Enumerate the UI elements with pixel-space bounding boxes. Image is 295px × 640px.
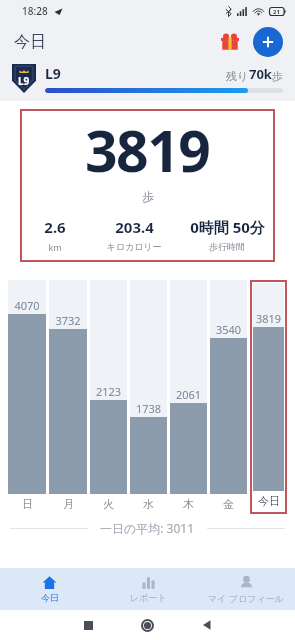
staticText: 2061 [170,387,207,402]
staticText: 今日 [258,494,280,508]
button[interactable]: Recents [59,610,118,640]
staticText: 歩 [142,189,154,204]
staticText: 3819 [253,311,284,326]
staticText: 一日の平均: 3011 [100,520,195,536]
staticText: km [48,241,62,253]
staticText: キロカロリー [106,241,162,252]
staticText: 火 [103,497,114,511]
staticText: 月 [63,497,74,511]
button[interactable]: Add [253,27,283,57]
staticText: 0時間 50分 [190,217,265,237]
staticText: 3540 [210,322,247,337]
staticText: 21 [273,8,280,16]
staticText: 今日 [41,592,59,603]
button[interactable]: Back [177,610,236,640]
staticText: 70k [249,65,272,83]
button[interactable]: Gifts [216,28,244,56]
staticText: 4070 [8,298,46,313]
staticText: L9 [18,74,30,88]
staticText: 今日 [14,32,46,52]
button[interactable]: 今日 [0,568,99,610]
button[interactable]: Home [118,610,177,640]
staticText: 残り [226,69,249,83]
staticText: 3819 [85,111,210,189]
staticText: L9 [45,64,61,83]
button[interactable]: 3819 [20,109,275,262]
staticText: 木 [183,497,194,511]
button[interactable]: 3732 [49,280,87,514]
staticText: 金 [223,497,234,511]
button[interactable]: 2061 [170,280,207,514]
staticText: 3732 [49,313,87,328]
staticText: 1738 [130,401,167,416]
button[interactable]: レポート [99,568,197,610]
button[interactable]: 2123 [90,280,127,514]
button[interactable]: マイ プロフィール [197,568,295,610]
staticText: 203.4 [115,217,154,237]
staticText: 18:28 [22,4,48,18]
staticText: 2123 [90,384,127,399]
staticText: 2.6 [44,217,66,237]
button[interactable]: 3819 [250,280,287,514]
staticText: 歩行時間 [209,241,245,252]
staticText: 水 [143,497,154,511]
staticText: マイ プロフィール [208,592,284,604]
button[interactable]: 1738 [130,280,167,514]
staticText: 日 [22,497,33,511]
staticText: 歩 [272,69,283,83]
staticText: レポート [130,592,167,603]
button[interactable]: 3540 [210,280,247,514]
button[interactable]: 4070 [8,280,46,514]
